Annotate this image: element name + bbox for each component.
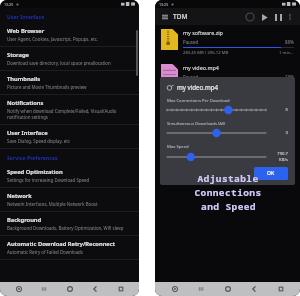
staticText: 88% — [285, 39, 294, 45]
button[interactable]: my video.mp4 — [155, 60, 300, 89]
button[interactable]: Back — [247, 282, 261, 296]
staticText: Speed Optimization — [7, 168, 63, 176]
staticText: Picture and Movie Thumbnails preview — [7, 84, 87, 90]
button[interactable]: Assistant — [168, 282, 182, 296]
button[interactable]: Storage — [0, 47, 139, 70]
button[interactable]: Thumbnails — [0, 71, 139, 94]
button[interactable]: Status — [244, 11, 256, 23]
button[interactable]: OK — [254, 167, 288, 180]
staticText: User Interface — [7, 13, 45, 20]
button[interactable]: More options — [285, 12, 295, 22]
staticText: 3 — [272, 130, 288, 136]
staticText: User Agent, Cookies, Javascript, Popups,… — [7, 36, 99, 42]
button[interactable]: Pause all — [272, 11, 284, 23]
staticText: Network Interfaces, Multiple Network Boo… — [7, 201, 98, 207]
staticText: 283.45 MB / 296.12 MB — [183, 50, 229, 56]
staticText: Automatic Retry of Failed Downloads — [7, 249, 83, 255]
button[interactable]: Recents — [37, 282, 51, 296]
staticText: Network — [7, 192, 32, 200]
button[interactable]: Network — [0, 188, 139, 211]
button[interactable]: Assistant — [12, 282, 26, 296]
button[interactable]: Notifications — [0, 95, 139, 124]
button[interactable]: Speed Optimization — [0, 164, 139, 187]
staticText: Automatic Download Retry/Reconnect — [7, 240, 115, 248]
button[interactable]: Recents — [194, 282, 208, 296]
staticText: Download save directory, local space pre… — [7, 60, 111, 66]
staticText: Max Speed — [167, 144, 189, 150]
staticText: 13:25 — [159, 2, 169, 7]
staticText: Settings for increasing Download Speed — [7, 177, 90, 183]
staticText: my software.zip — [183, 29, 223, 36]
staticText: 13:25 — [4, 2, 14, 7]
staticText: Connections — [194, 186, 262, 199]
staticText: 23% — [285, 74, 294, 80]
staticText: Max Connections Per Download — [167, 98, 230, 104]
staticText: 790.7 KB/s — [272, 151, 288, 162]
button[interactable]: Home — [63, 282, 77, 296]
button[interactable]: Home — [221, 282, 235, 296]
staticText: TDM — [173, 12, 188, 21]
staticText: Web Browser — [7, 27, 45, 35]
button[interactable]: Back — [88, 282, 102, 296]
staticText: and Speed — [201, 200, 256, 213]
button[interactable]: User Interface — [0, 125, 139, 148]
staticText: Background Downloads, Battery Optimizati… — [7, 225, 124, 231]
staticText: Paused — [183, 39, 199, 45]
staticText: Background — [7, 216, 42, 224]
button[interactable]: Screenshot — [274, 282, 288, 296]
staticText: Storage — [7, 51, 29, 59]
staticText: Paused — [183, 74, 199, 80]
button[interactable]: Menu — [160, 12, 170, 22]
staticText: Save Dialog, Speed display, etc — [7, 138, 71, 144]
staticText: 5 — [272, 107, 288, 113]
button[interactable]: Background — [0, 212, 139, 235]
button[interactable]: Start all — [258, 11, 270, 23]
staticText: User Interface — [7, 129, 48, 137]
staticText: Adjustable — [197, 172, 259, 185]
button[interactable]: Web Browser — [0, 23, 139, 46]
staticText: Simultaneous Downloads (All) — [167, 121, 226, 127]
staticText: 1 min... — [279, 50, 294, 56]
staticText: my video.mp4 — [183, 64, 219, 71]
button[interactable]: my software.zip — [155, 25, 300, 60]
staticText: Thumbnails — [7, 75, 41, 83]
staticText: OK — [267, 170, 275, 177]
staticText: Notify when download Complete/Failed, Vi… — [7, 108, 117, 120]
staticText: Notifications — [7, 99, 44, 107]
staticText: my video.mp4 — [177, 83, 219, 91]
staticText: Service Preferences — [7, 154, 58, 161]
button[interactable]: Automatic Download Retry/Reconnect — [0, 236, 139, 259]
button[interactable]: Screenshot — [114, 282, 128, 296]
